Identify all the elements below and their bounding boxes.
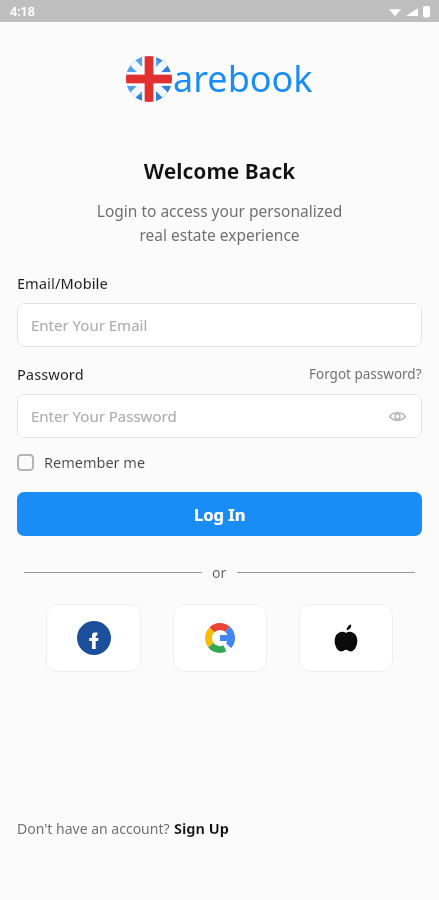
- staticText: Login to access your personalized real e…: [0, 200, 439, 245]
- staticText: 4:18: [10, 3, 35, 20]
- staticText: Enter Your Email: [31, 315, 148, 335]
- staticText: Forgot password?: [309, 365, 422, 383]
- staticText: Sign Up: [174, 818, 229, 838]
- button[interactable]: Sign in with Facebook: [46, 604, 141, 672]
- button[interactable]: Don't have an account?: [17, 818, 229, 838]
- button[interactable]: Enter Your Password: [17, 394, 422, 438]
- staticText: Log In: [194, 503, 246, 525]
- staticText: Email/Mobile: [17, 273, 108, 293]
- staticText: Remember me: [44, 452, 146, 472]
- staticText: Welcome Back: [0, 157, 439, 186]
- button[interactable]: Sign in with Google: [173, 604, 267, 672]
- staticText: arebook: [173, 54, 313, 103]
- staticText: Enter Your Password: [31, 406, 177, 426]
- staticText: Don't have an account?: [17, 819, 174, 838]
- button[interactable]: Log In: [17, 492, 422, 536]
- staticText: or: [212, 563, 227, 582]
- button[interactable]: Forgot password?: [309, 365, 422, 383]
- button[interactable]: Remember me: [17, 452, 146, 472]
- button[interactable]: Sign in with Apple: [299, 604, 393, 672]
- button[interactable]: Show password: [386, 405, 408, 427]
- button[interactable]: Enter Your Email: [17, 303, 422, 347]
- staticText: Password: [17, 364, 84, 384]
